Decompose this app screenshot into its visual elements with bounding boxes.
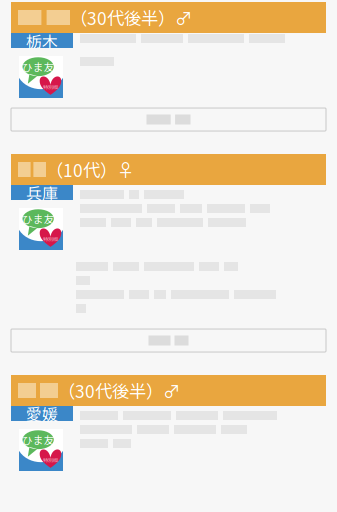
- staticText: （30代後半）♂: [70, 5, 192, 30]
- staticText: 愛媛: [26, 402, 58, 425]
- staticText: ひま友: [22, 211, 55, 226]
- button[interactable]: 返信する: [11, 108, 326, 131]
- staticText: ひま友: [22, 59, 55, 74]
- staticText: 栃木: [26, 29, 58, 52]
- staticText: 特別版: [43, 235, 58, 243]
- staticText: 特別版: [43, 456, 58, 464]
- button[interactable]: 返信する: [11, 329, 326, 352]
- staticText: ひま友: [22, 432, 55, 447]
- staticText: （30代後半）♂: [58, 378, 180, 403]
- staticText: （10代）♀: [46, 157, 134, 182]
- staticText: 特別版: [43, 83, 58, 91]
- staticText: 兵庫: [26, 181, 58, 204]
